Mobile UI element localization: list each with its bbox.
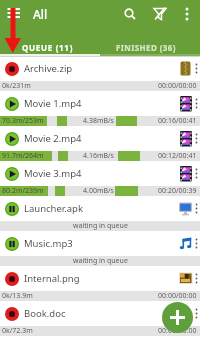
button[interactable]: Movie 3.mp4 xyxy=(0,161,200,196)
button[interactable]: FINISHED (36) xyxy=(100,27,200,56)
button[interactable] xyxy=(0,1,26,27)
staticText: 00:20/00:39 xyxy=(158,186,197,196)
staticText: 4.00mB/s xyxy=(83,186,114,196)
staticText: 4.16mB/s xyxy=(83,151,114,161)
button[interactable]: Launcher.apk xyxy=(0,196,200,231)
button[interactable] xyxy=(148,2,172,26)
staticText: 0k/231m xyxy=(2,81,31,91)
staticText: Internal.png xyxy=(24,272,80,285)
button[interactable]: Movie 2.mp4 xyxy=(0,126,200,161)
staticText: 91.7m/264m xyxy=(2,151,44,161)
staticText: Movie 3.mp4 xyxy=(24,167,82,180)
staticText: Archive.zip xyxy=(24,62,73,75)
staticText: 00:00/00:00 xyxy=(158,81,197,91)
staticText: Launcher.apk xyxy=(24,202,84,215)
staticText: FINISHED (36) xyxy=(116,42,176,53)
staticText: waiting in queue xyxy=(73,256,128,266)
button[interactable]: Internal.png xyxy=(0,266,200,301)
button[interactable] xyxy=(162,302,193,333)
staticText: 00:00/00:00 xyxy=(158,291,197,301)
button[interactable]: Book.doc xyxy=(0,301,200,336)
staticText: 4.38mB/s xyxy=(83,116,114,126)
staticText: 0k/72.3m xyxy=(2,326,33,336)
staticText: 00:12/00:41 xyxy=(158,151,197,161)
button[interactable]: QUEUE (11) xyxy=(0,27,100,56)
staticText: 80.2m/239m xyxy=(2,186,44,196)
button[interactable]: Archive.zip xyxy=(0,56,200,91)
staticText: 00:00/00:00 xyxy=(158,326,197,336)
staticText: waiting in queue xyxy=(73,221,128,231)
button[interactable]: Movie 1.mp4 xyxy=(0,91,200,126)
button[interactable] xyxy=(176,3,198,25)
button[interactable]: Music.mp3 xyxy=(0,231,200,266)
staticText: Movie 2.mp4 xyxy=(24,132,82,145)
staticText: Book.doc xyxy=(24,307,66,320)
staticText: Movie 1.mp4 xyxy=(24,97,82,110)
staticText: 70.3m/253m xyxy=(2,116,44,126)
staticText: QUEUE (11) xyxy=(22,42,74,53)
staticText: All xyxy=(33,6,48,22)
staticText: 0k/13.9m xyxy=(2,291,33,301)
button[interactable] xyxy=(118,2,142,26)
staticText: Music.mp3 xyxy=(24,237,73,250)
staticText: 00:16/00:41 xyxy=(158,116,197,126)
